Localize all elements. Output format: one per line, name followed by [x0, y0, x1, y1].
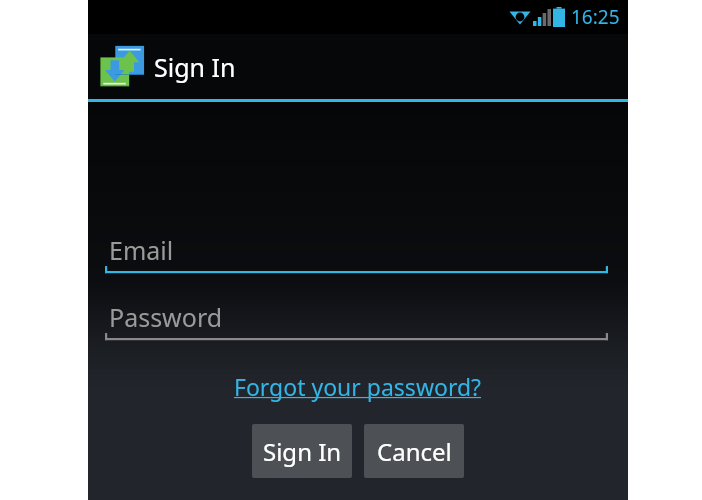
button[interactable]: Sign In [252, 424, 352, 478]
button[interactable]: Email [105, 233, 608, 280]
staticText: Sign In [263, 435, 342, 468]
staticText: Password [109, 300, 223, 334]
button[interactable]: Forgot your password? [88, 371, 628, 402]
staticText: Forgot your password? [234, 371, 482, 402]
button[interactable]: Cancel [364, 424, 464, 478]
staticText: Sign In [154, 50, 236, 84]
staticText: 16:25 [571, 4, 620, 30]
staticText: Email [109, 233, 174, 267]
staticText: Cancel [377, 435, 452, 468]
button[interactable]: Password [105, 300, 608, 347]
